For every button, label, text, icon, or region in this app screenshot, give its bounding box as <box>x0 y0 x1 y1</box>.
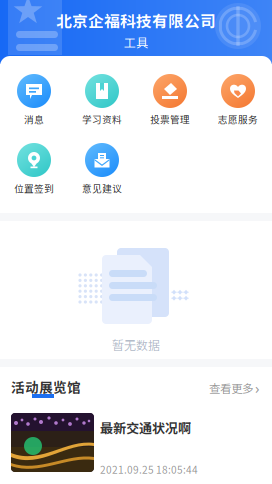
staticText: › <box>255 378 260 398</box>
button[interactable]: 位置签到 <box>0 143 68 197</box>
button[interactable]: 投票管理 <box>136 74 204 128</box>
button[interactable]: 志愿服务 <box>204 74 272 128</box>
staticText: 投票管理 <box>150 112 190 126</box>
staticText: 志愿服务 <box>218 112 258 126</box>
button[interactable]: 最新交通状况啊 <box>11 413 261 472</box>
staticText: 最新交通状况啊 <box>100 418 191 437</box>
staticText: 2021.09.25 18:05:44 <box>100 462 198 477</box>
staticText: 暂无数据 <box>112 336 160 353</box>
staticText: 意见建议 <box>82 181 122 195</box>
button[interactable]: 消息 <box>0 74 68 128</box>
staticText: 活动展览馆 <box>11 377 81 397</box>
staticText: 工具 <box>124 34 148 51</box>
button[interactable]: 学习资料 <box>68 74 136 128</box>
staticText: 学习资料 <box>82 112 122 126</box>
button[interactable]: 查看更多 <box>198 378 260 398</box>
button[interactable]: 意见建议 <box>68 143 136 197</box>
staticText: 消息 <box>24 112 44 126</box>
staticText: 北京企福科技有限公司 <box>56 9 216 32</box>
staticText: 查看更多 <box>209 380 253 396</box>
staticText: 位置签到 <box>14 181 54 195</box>
